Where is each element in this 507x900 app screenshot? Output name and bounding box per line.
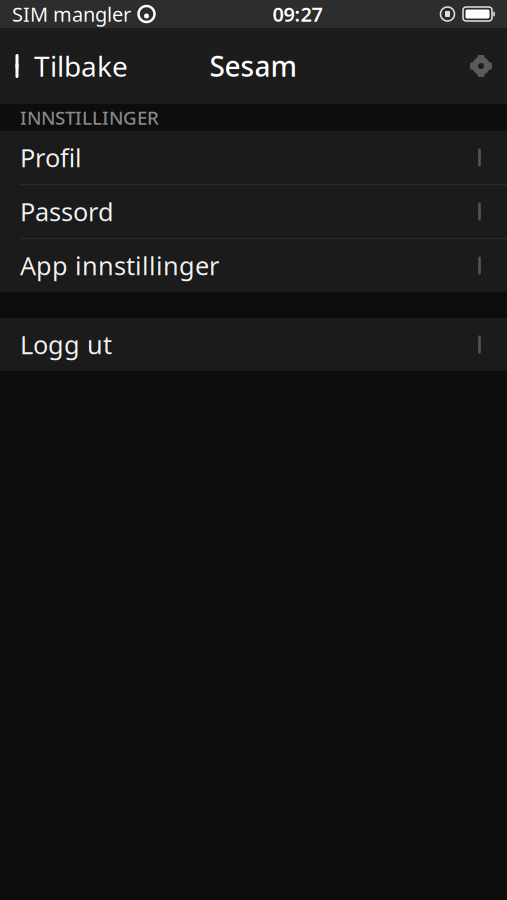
button[interactable]: Logg ut xyxy=(0,318,507,371)
staticText: Passord xyxy=(20,195,114,228)
button[interactable]: Tilbake xyxy=(0,41,140,91)
staticText: Profil xyxy=(20,141,82,174)
staticText: INNSTILLINGER xyxy=(20,105,159,130)
button[interactable]: Profil xyxy=(0,131,507,184)
staticText: App innstillinger xyxy=(20,249,219,282)
button[interactable]: Settings xyxy=(455,41,507,91)
button[interactable]: Passord xyxy=(0,185,507,238)
staticText: Logg ut xyxy=(20,328,112,361)
staticText: 09:27 xyxy=(272,1,322,27)
staticText: Tilbake xyxy=(34,47,128,85)
staticText: Sesam xyxy=(209,47,297,85)
staticText: SIM mangler xyxy=(12,1,131,27)
button[interactable]: App innstillinger xyxy=(0,239,507,292)
